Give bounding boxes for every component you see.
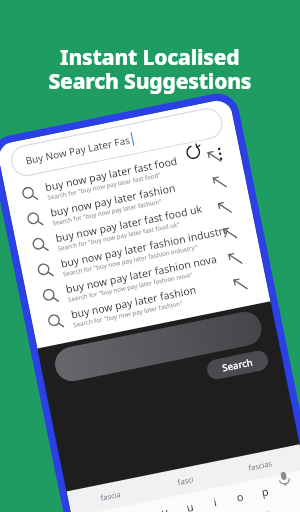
button[interactable]: Search [215, 337, 275, 359]
button[interactable]: Refresh [246, 214, 268, 236]
button[interactable]: Search field [80, 148, 240, 174]
button[interactable]: Voice input [168, 465, 190, 487]
